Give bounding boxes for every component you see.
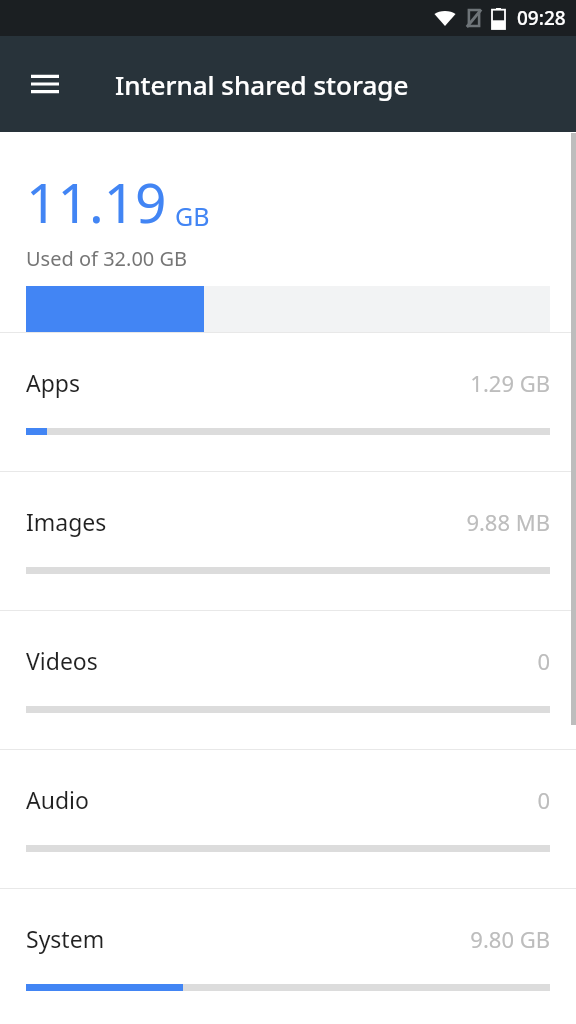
button[interactable]: Apps: [0, 333, 576, 471]
staticText: Apps: [26, 367, 81, 398]
staticText: 9.88 MB: [115, 507, 550, 537]
staticText: Internal shared storage: [115, 67, 409, 102]
staticText: System: [26, 923, 105, 954]
button[interactable]: Images: [0, 472, 576, 610]
staticText: 0: [106, 646, 550, 676]
staticText: GB: [175, 199, 210, 233]
button[interactable]: 11.19: [0, 132, 576, 332]
staticText: 1.29 GB: [89, 368, 550, 398]
staticText: 9.80 GB: [113, 924, 550, 954]
staticText: 09:28: [517, 5, 566, 31]
button[interactable]: Audio: [0, 750, 576, 888]
staticText: 11.19: [26, 164, 167, 239]
button[interactable]: System: [0, 889, 576, 1024]
staticText: Audio: [26, 784, 89, 815]
staticText: 0: [97, 785, 550, 815]
staticText: Videos: [26, 645, 98, 676]
button[interactable]: Videos: [0, 611, 576, 749]
button[interactable]: Open navigation menu: [10, 49, 80, 119]
staticText: Used of 32.00 GB: [26, 245, 188, 272]
staticText: Images: [26, 506, 107, 537]
